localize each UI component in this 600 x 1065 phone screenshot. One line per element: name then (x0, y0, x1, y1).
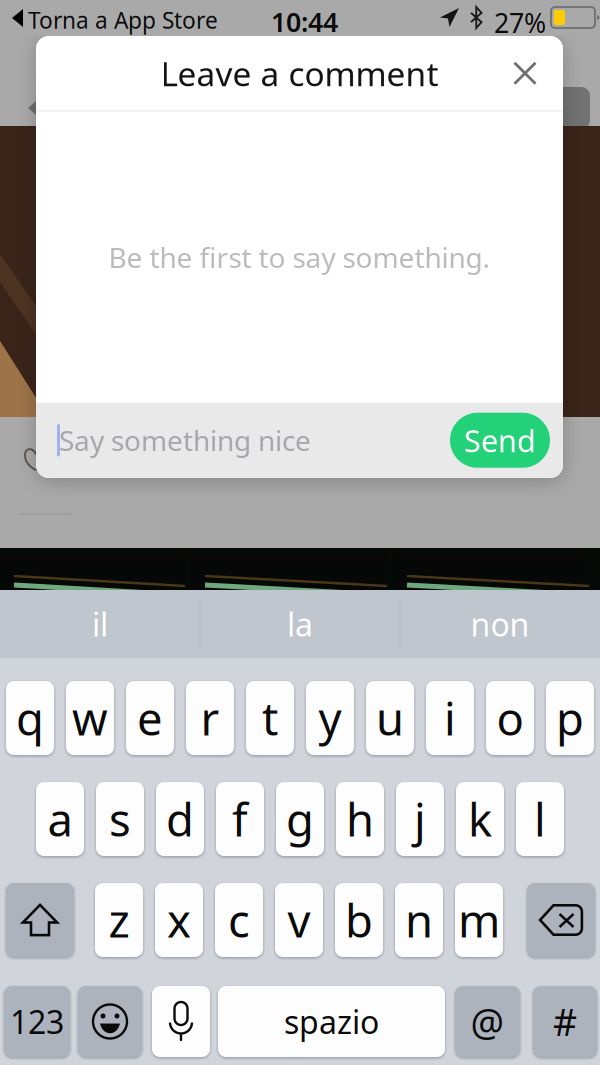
button[interactable]: r (186, 681, 234, 755)
button[interactable]: v (275, 883, 323, 957)
button[interactable]: f (216, 782, 264, 856)
button[interactable]: spazio (218, 986, 445, 1057)
staticText: l (534, 789, 546, 849)
staticText: b (345, 890, 373, 950)
staticText: Leave a comment (160, 51, 438, 95)
button[interactable]: non (400, 590, 599, 658)
button[interactable]: j (396, 782, 444, 856)
staticText: n (405, 890, 433, 950)
staticText: t (262, 688, 278, 748)
staticText: y (318, 688, 341, 748)
button[interactable]: i (426, 681, 474, 755)
staticText: s (109, 789, 131, 849)
button[interactable]: u (366, 681, 414, 755)
staticText: il (92, 603, 108, 645)
staticText: z (108, 890, 129, 950)
button[interactable]: h (336, 782, 384, 856)
button[interactable]: Emoji keyboard (78, 986, 142, 1057)
button[interactable]: w (66, 681, 114, 755)
button[interactable]: q (6, 681, 54, 755)
staticText: w (72, 688, 108, 748)
button[interactable]: o (486, 681, 534, 755)
staticText: Say something nice (59, 422, 311, 459)
button[interactable]: y (306, 681, 354, 755)
staticText: u (376, 688, 404, 748)
staticText: Be the first to say something. (108, 239, 490, 276)
staticText: o (496, 688, 523, 748)
button[interactable]: @ (455, 986, 520, 1057)
staticText: r (200, 688, 219, 748)
button[interactable]: p (546, 681, 594, 755)
staticText: f (232, 789, 248, 849)
button[interactable]: k (456, 782, 504, 856)
staticText: # (553, 997, 577, 1046)
button[interactable]: x (155, 883, 203, 957)
staticText: q (16, 688, 44, 748)
button[interactable]: Send (450, 413, 550, 468)
staticText: j (414, 789, 426, 849)
staticText: v (287, 890, 310, 950)
staticText: i (444, 688, 456, 748)
staticText: @ (470, 997, 504, 1046)
button[interactable]: z (95, 883, 143, 957)
staticText: 27% (494, 5, 546, 40)
button[interactable]: s (96, 782, 144, 856)
button[interactable]: n (395, 883, 443, 957)
staticText: a (47, 789, 72, 849)
staticText: k (468, 789, 492, 849)
staticText: non (470, 603, 529, 645)
staticText: h (346, 789, 374, 849)
button[interactable]: la (200, 590, 399, 658)
staticText: 10:44 (271, 4, 338, 39)
button[interactable]: c (215, 883, 263, 957)
button[interactable]: Dictation (152, 986, 210, 1057)
button[interactable]: Shift (6, 883, 74, 957)
button[interactable]: b (335, 883, 383, 957)
button[interactable]: g (276, 782, 324, 856)
button[interactable]: d (156, 782, 204, 856)
button[interactable]: a (36, 782, 84, 856)
staticText: 123 (10, 1000, 64, 1043)
button[interactable]: t (246, 681, 294, 755)
button[interactable]: # (533, 986, 597, 1057)
staticText: p (556, 688, 584, 748)
staticText: la (287, 603, 313, 645)
button[interactable]: m (455, 883, 503, 957)
button[interactable]: 123 (4, 986, 70, 1057)
button[interactable]: l (516, 782, 564, 856)
staticText: e (137, 688, 163, 748)
staticText: g (286, 789, 314, 849)
staticText: m (458, 890, 500, 950)
staticText: c (228, 890, 250, 950)
button[interactable]: e (126, 681, 174, 755)
button[interactable]: il (0, 590, 199, 658)
staticText: d (166, 789, 194, 849)
button[interactable]: Close (501, 49, 549, 97)
staticText: x (167, 890, 191, 950)
button[interactable]: Delete (527, 883, 595, 957)
staticText: spazio (284, 1000, 379, 1043)
staticText: Send (464, 420, 536, 461)
staticText: Torna a App Store (28, 5, 218, 35)
